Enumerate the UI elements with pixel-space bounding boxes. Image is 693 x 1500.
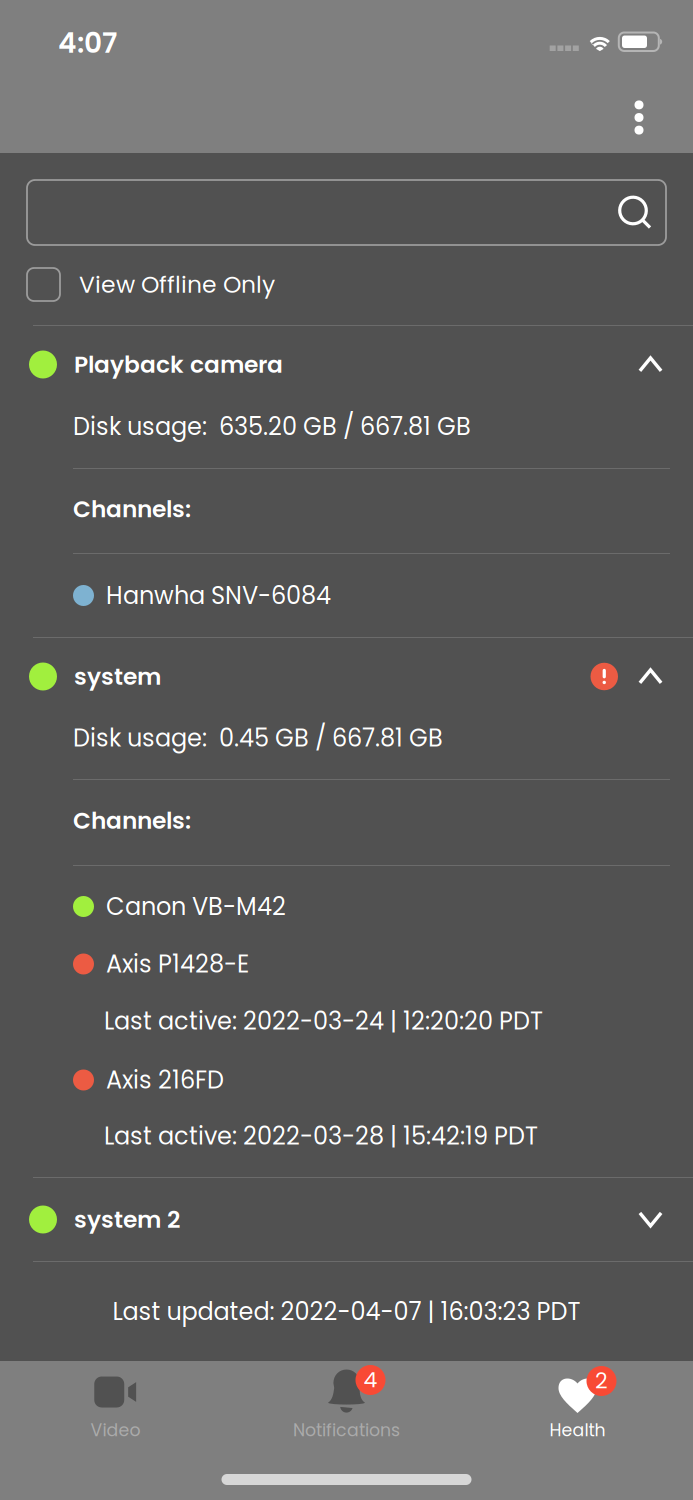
- staticText: Last updated: 2022-04-07 | 16:03:23 PDT: [112, 1295, 580, 1328]
- button[interactable]: 2: [462, 1361, 693, 1465]
- staticText: Notifications: [293, 1418, 400, 1442]
- staticText: Disk usage: 0.45 GB / 667.81 GB: [73, 721, 443, 755]
- button[interactable]: Search: [27, 180, 666, 245]
- staticText: system 2: [74, 1203, 180, 1236]
- staticText: system: [74, 660, 161, 693]
- button[interactable]: Playback camera: [0, 326, 693, 407]
- staticText: Axis P1428-E: [106, 947, 249, 981]
- staticText: Last active: 2022-03-28 | 15:42:19 PDT: [104, 1119, 538, 1153]
- staticText: Playback camera: [74, 348, 283, 381]
- staticText: Video: [90, 1418, 140, 1442]
- button[interactable]: View Offline Only: [0, 268, 693, 301]
- staticText: Health: [549, 1418, 605, 1442]
- button[interactable]: More options: [608, 82, 670, 153]
- button[interactable]: 4: [231, 1361, 462, 1465]
- staticText: Last active: 2022-03-24 | 12:20:20 PDT: [104, 1004, 543, 1038]
- staticText: Channels:: [73, 804, 191, 837]
- staticText: Channels:: [73, 493, 191, 525]
- button[interactable]: Video: [0, 1361, 231, 1465]
- staticText: View Offline Only: [79, 268, 275, 301]
- staticText: 4:07: [58, 23, 117, 63]
- staticText: Disk usage: 635.20 GB / 667.81 GB: [73, 410, 471, 443]
- staticText: Axis 216FD: [106, 1063, 224, 1097]
- button[interactable]: system: [0, 638, 693, 719]
- staticText: 2: [595, 1365, 608, 1396]
- button[interactable]: system 2: [0, 1178, 693, 1261]
- staticText: Canon VB-M42: [106, 890, 286, 923]
- staticText: Hanwha SNV-6084: [106, 579, 331, 612]
- staticText: 4: [363, 1364, 377, 1395]
